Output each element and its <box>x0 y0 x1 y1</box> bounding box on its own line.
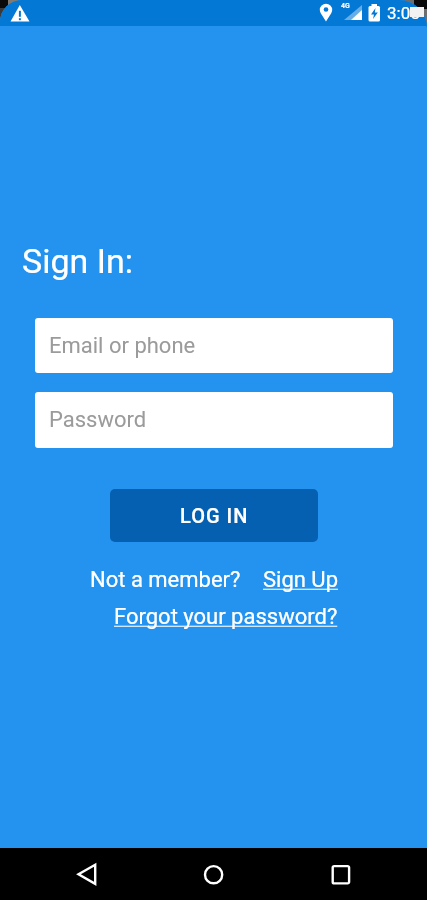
staticText: Email or phone <box>49 333 196 359</box>
staticText: Not a member? <box>90 567 241 593</box>
staticText: 4G <box>341 2 350 10</box>
staticText: Sign Up <box>263 567 338 593</box>
staticText: Sign In: <box>22 241 134 281</box>
staticText: Password <box>49 407 147 433</box>
staticText: 3:05 <box>387 3 420 23</box>
staticText: LOG IN <box>180 504 249 527</box>
staticText: Forgot your password? <box>114 604 338 630</box>
